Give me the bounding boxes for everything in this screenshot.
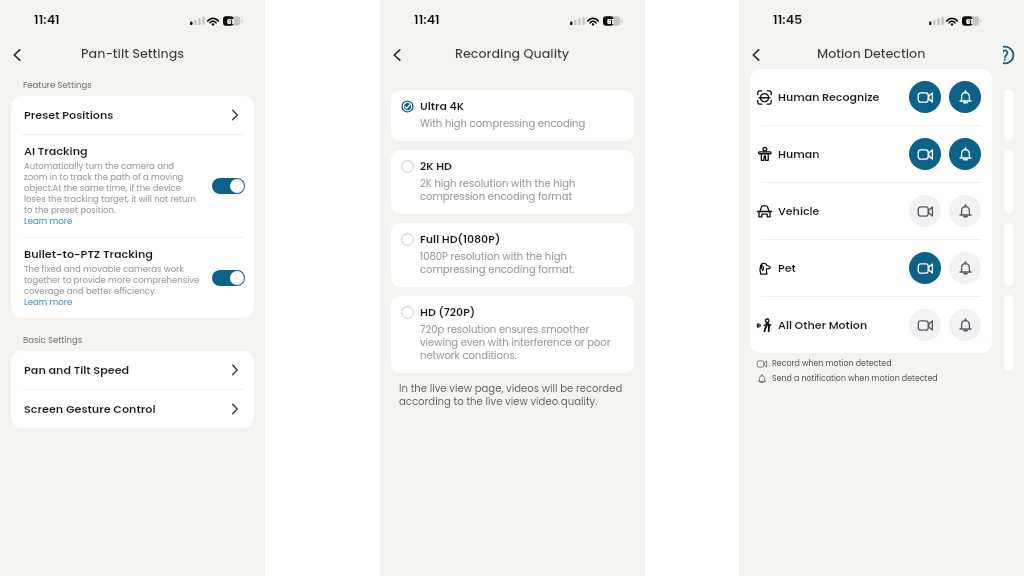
staticText: With high compressing encoding <box>420 117 586 130</box>
staticText: Automatically turn the camera and zoom i… <box>24 161 196 216</box>
staticText: Pan and Tilt Speed <box>24 364 130 377</box>
button[interactable]: Vehicle <box>750 183 992 239</box>
button[interactable]: All Other Motion <box>750 297 992 353</box>
staticText: The fixed and movable cameras work toget… <box>24 264 200 297</box>
button[interactable]: Notify <box>949 309 981 341</box>
staticText: AI Tracking <box>24 145 88 159</box>
staticText: Vehicle <box>778 205 820 218</box>
button[interactable]: Pet <box>750 240 992 296</box>
staticText: All Other Motion <box>778 319 868 332</box>
staticText: 2K high resolution with the high compres… <box>420 177 620 203</box>
staticText: Basic Settings <box>23 336 83 346</box>
button[interactable]: Record <box>909 195 941 227</box>
staticText: 61 <box>607 17 615 27</box>
staticText: 1080P resolution with the high compressi… <box>420 250 620 276</box>
staticText: 720p resolution ensures smoother viewing… <box>420 323 620 362</box>
button[interactable]: Record <box>909 81 941 113</box>
button[interactable]: Full HD(1080P) <box>391 223 634 287</box>
staticText: Pan-tilt Settings <box>81 48 185 61</box>
button[interactable]: Human <box>750 126 992 182</box>
staticText: Motion Detection <box>817 48 926 61</box>
staticText: Human Recognize <box>778 91 880 104</box>
staticText: Human <box>778 148 820 161</box>
button[interactable]: Back <box>383 41 411 69</box>
button[interactable]: Record <box>909 138 941 170</box>
staticText: Send a notification when motion detected <box>772 374 938 384</box>
button[interactable]: Human Recognize <box>750 69 992 125</box>
staticText: HD (720P) <box>420 306 476 319</box>
button[interactable]: Notify <box>949 138 981 170</box>
button[interactable]: Screen Gesture Control <box>11 390 254 428</box>
button[interactable]: Record <box>909 252 941 284</box>
button[interactable]: HD (720P) <box>391 296 634 373</box>
staticText: Feature Settings <box>23 81 92 91</box>
button[interactable]: Notify <box>949 195 981 227</box>
staticText: 11:41 <box>414 14 440 27</box>
staticText: In the live view page, videos will be re… <box>399 383 626 409</box>
button[interactable]: Help <box>1003 45 1015 65</box>
staticText: 2K HD <box>420 160 452 173</box>
staticText: 61 <box>227 17 235 27</box>
button[interactable]: Learn more <box>24 297 73 308</box>
button[interactable]: Toggle Bullet-to-PTZ Tracking <box>212 270 245 286</box>
button[interactable]: Notify <box>949 81 981 113</box>
staticText: Ultra 4K <box>420 100 465 113</box>
staticText: 61 <box>966 17 974 27</box>
button[interactable]: Preset Positions <box>11 96 254 134</box>
staticText: Recording Quality <box>455 48 570 61</box>
staticText: Pet <box>778 262 796 275</box>
button[interactable]: Pan and Tilt Speed <box>11 351 254 389</box>
button[interactable]: 2K HD <box>391 150 634 214</box>
button[interactable]: Back <box>3 41 31 69</box>
staticText: Bullet-to-PTZ Tracking <box>24 248 153 262</box>
staticText: 11:45 <box>773 14 803 27</box>
button[interactable]: Record <box>909 309 941 341</box>
button[interactable]: Back <box>742 41 770 69</box>
staticText: 11:41 <box>34 14 60 27</box>
button[interactable]: Notify <box>949 252 981 284</box>
button[interactable]: Ultra 4K <box>391 90 634 141</box>
button[interactable]: Toggle AI Tracking <box>212 178 245 194</box>
staticText: Full HD(1080P) <box>420 233 501 246</box>
button[interactable]: Learn more <box>24 216 73 227</box>
button[interactable]: AI Tracking <box>11 135 254 237</box>
button[interactable]: Bullet-to-PTZ Tracking <box>11 238 254 318</box>
staticText: Preset Positions <box>24 109 114 122</box>
staticText: Record when motion detected <box>772 359 892 369</box>
staticText: Screen Gesture Control <box>24 403 156 416</box>
